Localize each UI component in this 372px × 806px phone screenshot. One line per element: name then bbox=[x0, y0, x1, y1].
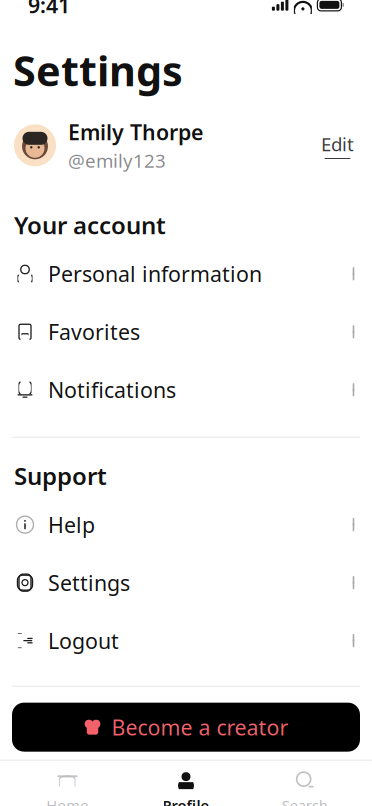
staticText: @emily123 bbox=[68, 148, 166, 173]
staticText: Search bbox=[282, 796, 328, 806]
staticText: Support bbox=[14, 460, 107, 492]
staticText: 9:41 bbox=[28, 0, 70, 19]
button[interactable]: Notifications bbox=[0, 361, 372, 419]
staticText: Personal information bbox=[48, 260, 262, 288]
staticText: Your account bbox=[14, 209, 166, 241]
button[interactable]: Logout bbox=[0, 612, 372, 670]
button[interactable]: Become a creator bbox=[12, 703, 360, 752]
staticText: Settings bbox=[48, 568, 130, 597]
staticText: Edit bbox=[321, 132, 354, 156]
staticText: Logout bbox=[48, 626, 119, 655]
button[interactable]: Profile bbox=[127, 761, 245, 806]
staticText: Favorites bbox=[48, 318, 140, 346]
staticText: Settings bbox=[13, 43, 183, 98]
staticText: Home bbox=[46, 796, 88, 806]
staticText: Emily Thorpe bbox=[68, 118, 203, 146]
button[interactable]: Edit bbox=[317, 126, 358, 165]
button[interactable]: Home bbox=[8, 761, 127, 806]
staticText: Become a creator bbox=[111, 713, 288, 741]
button[interactable]: Help bbox=[0, 496, 372, 554]
button[interactable]: Search bbox=[245, 761, 364, 806]
button[interactable]: Favorites bbox=[0, 303, 372, 361]
staticText: Profile bbox=[162, 796, 209, 806]
staticText: Help bbox=[48, 510, 95, 539]
button[interactable]: Personal information bbox=[0, 245, 372, 303]
staticText: Notifications bbox=[48, 376, 176, 404]
button[interactable]: Settings bbox=[0, 554, 372, 612]
